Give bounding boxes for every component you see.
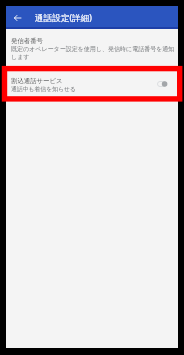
staticText: 通話中も着信を知らせる [11, 85, 76, 92]
button[interactable]: 割込通話サービス [6, 77, 178, 92]
button[interactable]: Back [6, 7, 28, 29]
staticText: 通話設定(詳細) [35, 12, 92, 24]
staticText: 割込通話サービス [11, 77, 63, 85]
staticText: 発信者番号 [11, 37, 43, 45]
staticText: 既定のオペレーター設定を使用し、発信時に電話番号を通知します [11, 45, 177, 60]
button[interactable]: 割込通話サービス [152, 78, 173, 92]
button[interactable]: 発信者番号 [6, 29, 178, 60]
